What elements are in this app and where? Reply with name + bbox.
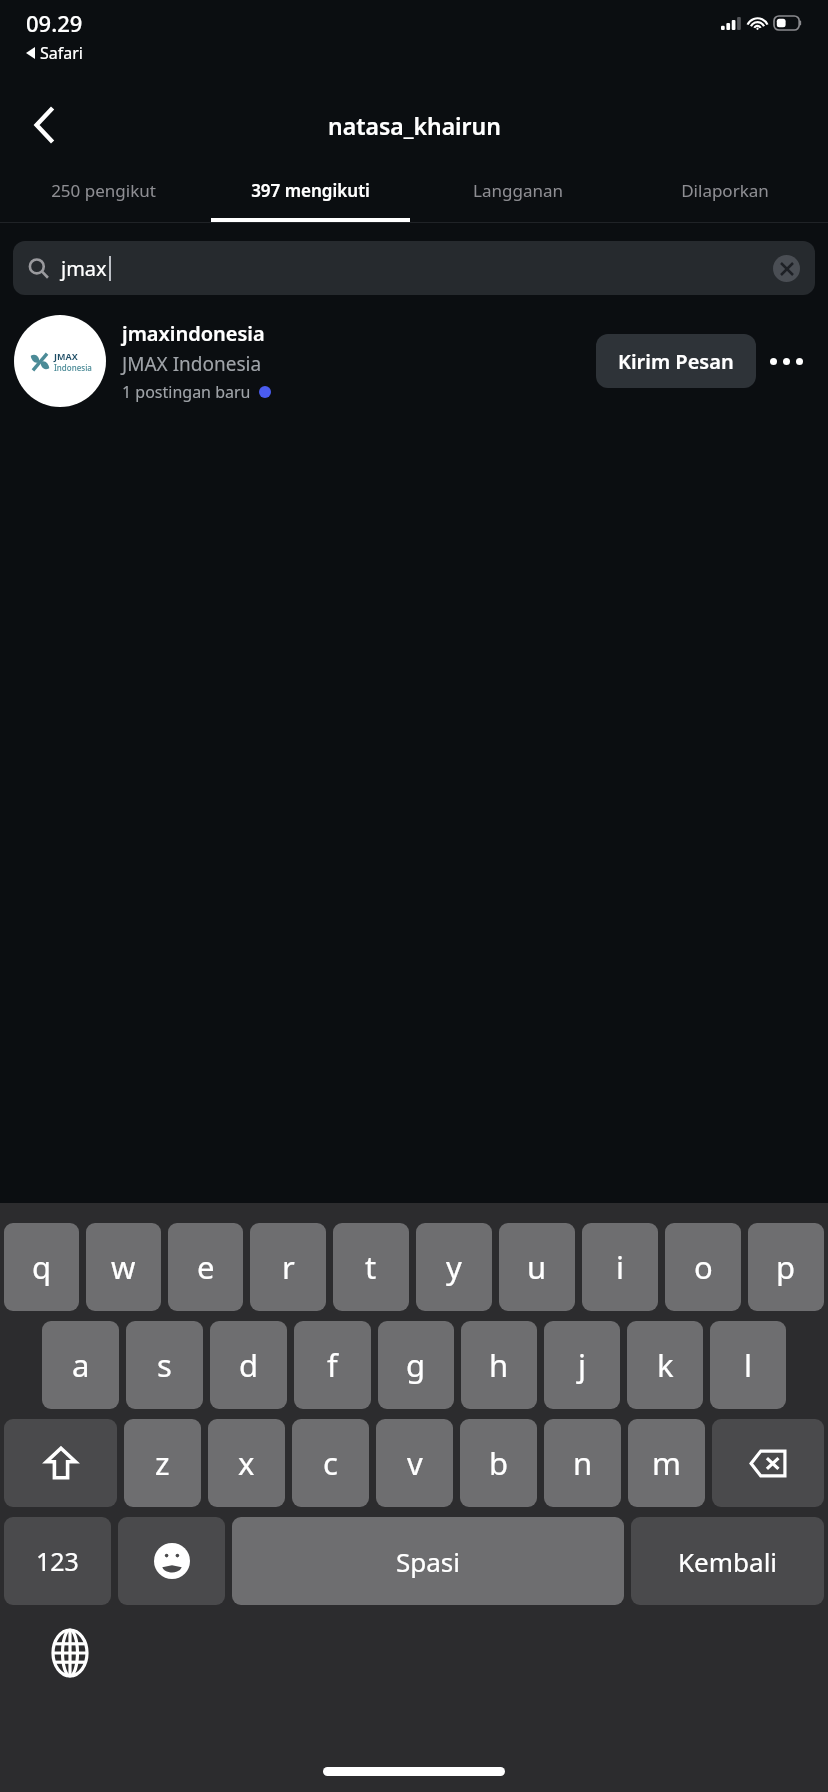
staticText: v [407, 1442, 423, 1484]
staticText: b [489, 1442, 509, 1484]
button[interactable]: t [333, 1223, 409, 1311]
staticText: JMAX [54, 350, 78, 362]
button[interactable]: Langganan [414, 162, 621, 218]
staticText: Dilaporkan [681, 179, 769, 202]
staticText: d [239, 1344, 259, 1386]
button[interactable]: 397 mengikuti [207, 162, 414, 218]
button[interactable]: Dilaporkan [621, 162, 828, 218]
staticText: Kembali [678, 1544, 778, 1579]
button[interactable]: i [582, 1223, 658, 1311]
button[interactable]: Change keyboard [42, 1625, 98, 1681]
button[interactable]: Backspace [712, 1419, 824, 1507]
button[interactable]: f [294, 1321, 371, 1409]
staticText: 1 postingan baru [122, 381, 251, 403]
staticText: n [573, 1442, 593, 1484]
button[interactable]: Shift [4, 1419, 117, 1507]
button[interactable]: m [628, 1419, 705, 1507]
staticText: k [657, 1344, 674, 1386]
button[interactable]: d [210, 1321, 287, 1409]
staticText: i [616, 1246, 624, 1288]
button[interactable]: s [126, 1321, 203, 1409]
button[interactable]: y [416, 1223, 492, 1311]
button[interactable]: a [42, 1321, 119, 1409]
button[interactable]: z [124, 1419, 201, 1507]
staticText: 397 mengikuti [251, 179, 370, 202]
button[interactable]: n [544, 1419, 621, 1507]
button[interactable]: b [460, 1419, 537, 1507]
button[interactable]: h [461, 1321, 537, 1409]
button[interactable]: l [710, 1321, 786, 1409]
staticText: a [72, 1344, 90, 1386]
button[interactable]: q [4, 1223, 79, 1311]
staticText: jmax [61, 255, 107, 282]
button[interactable]: e [168, 1223, 243, 1311]
button[interactable]: 250 pengikut [0, 162, 207, 218]
staticText: h [489, 1344, 509, 1386]
button[interactable]: Kirim Pesan [596, 334, 756, 388]
button[interactable]: g [378, 1321, 454, 1409]
button[interactable]: 123 [4, 1517, 111, 1605]
button[interactable]: u [499, 1223, 575, 1311]
staticText: 123 [36, 1544, 79, 1578]
staticText: x [238, 1442, 255, 1484]
button[interactable]: o [665, 1223, 741, 1311]
staticText: p [776, 1246, 796, 1288]
button[interactable]: Spasi [232, 1517, 624, 1605]
staticText: e [197, 1246, 215, 1288]
staticText: c [323, 1442, 338, 1484]
staticText: natasa_khairun [328, 110, 501, 141]
button[interactable]: j [544, 1321, 620, 1409]
button[interactable]: v [376, 1419, 453, 1507]
staticText: y [446, 1246, 462, 1288]
staticText: Spasi [396, 1544, 461, 1579]
staticText: Kirim Pesan [618, 348, 734, 375]
staticText: u [527, 1246, 547, 1288]
staticText: jmaxindonesia [122, 320, 265, 347]
staticText: 09.29 [26, 8, 83, 38]
button[interactable]: JMAX [0, 309, 828, 413]
staticText: s [157, 1344, 172, 1386]
button[interactable]: jmax [13, 241, 815, 295]
button[interactable]: Kembali [631, 1517, 824, 1605]
button[interactable]: w [86, 1223, 161, 1311]
staticText: q [32, 1246, 52, 1288]
staticText: JMAX Indonesia [122, 351, 262, 377]
staticText: m [652, 1442, 681, 1484]
button[interactable]: Clear text [773, 255, 800, 282]
staticText: t [365, 1246, 377, 1288]
staticText: g [406, 1344, 426, 1386]
staticText: f [327, 1344, 338, 1386]
button[interactable]: Back [16, 96, 74, 154]
staticText: 250 pengikut [51, 179, 156, 202]
button[interactable]: k [627, 1321, 703, 1409]
staticText: o [694, 1246, 713, 1288]
staticText: z [155, 1442, 170, 1484]
staticText: l [744, 1344, 752, 1386]
button[interactable]: p [748, 1223, 824, 1311]
staticText: w [111, 1246, 136, 1288]
staticText: r [282, 1246, 295, 1288]
button[interactable]: Emoji [118, 1517, 225, 1605]
button[interactable]: r [250, 1223, 326, 1311]
button[interactable]: More options [756, 334, 816, 388]
staticText: Indonesia [54, 362, 92, 373]
button[interactable]: c [292, 1419, 369, 1507]
staticText: j [578, 1344, 586, 1386]
button[interactable]: x [208, 1419, 285, 1507]
staticText: Safari [40, 42, 83, 64]
staticText: Langganan [473, 179, 563, 202]
